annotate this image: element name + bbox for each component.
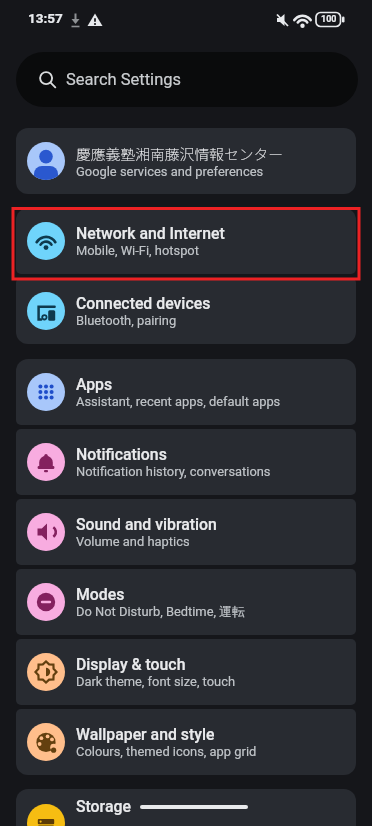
staticText: Display & touch	[76, 655, 186, 674]
staticText: Do Not Disturb, Bedtime, 運転	[76, 604, 246, 620]
button[interactable]: Sound and vibration	[16, 499, 356, 565]
staticText: Assistant, recent apps, default apps	[76, 394, 281, 409]
staticText: Google services and preferences	[76, 164, 264, 179]
button[interactable]: 慶應義塾湘南藤沢情報センター	[16, 128, 356, 194]
staticText: Mobile, Wi-Fi, hotspot	[76, 243, 199, 258]
staticText: Notification history, conversations	[76, 464, 271, 479]
staticText: Wallpaper and style	[76, 725, 215, 744]
staticText: Modes	[76, 585, 125, 604]
button[interactable]: Notifications	[16, 429, 356, 495]
staticText: Network and Internet	[76, 224, 225, 243]
staticText: Storage	[76, 797, 131, 816]
button[interactable]: Wallpaper and style	[16, 709, 356, 775]
staticText: Connected devices	[76, 294, 211, 313]
staticText: Dark theme, font size, touch	[76, 674, 236, 689]
button[interactable]: Modes	[16, 569, 356, 635]
button[interactable]: Storage	[16, 789, 356, 826]
button[interactable]: Network and Internet	[16, 208, 356, 274]
staticText: Volume and haptics	[76, 534, 190, 549]
staticText: Search Settings	[66, 70, 182, 89]
button[interactable]: Connected devices	[16, 278, 356, 344]
staticText: 13:57	[28, 10, 63, 26]
staticText: 慶應義塾湘南藤沢情報センター	[76, 143, 284, 164]
staticText: 100	[321, 14, 337, 25]
staticText: Colours, themed icons, app grid	[76, 744, 257, 759]
staticText: Sound and vibration	[76, 515, 217, 534]
staticText: Bluetooth, pairing	[76, 313, 177, 328]
staticText: Apps	[76, 375, 113, 394]
button[interactable]: Search Settings	[16, 52, 358, 107]
button[interactable]: Apps	[16, 359, 356, 425]
staticText: Notifications	[76, 445, 167, 464]
button[interactable]: Display & touch	[16, 639, 356, 705]
